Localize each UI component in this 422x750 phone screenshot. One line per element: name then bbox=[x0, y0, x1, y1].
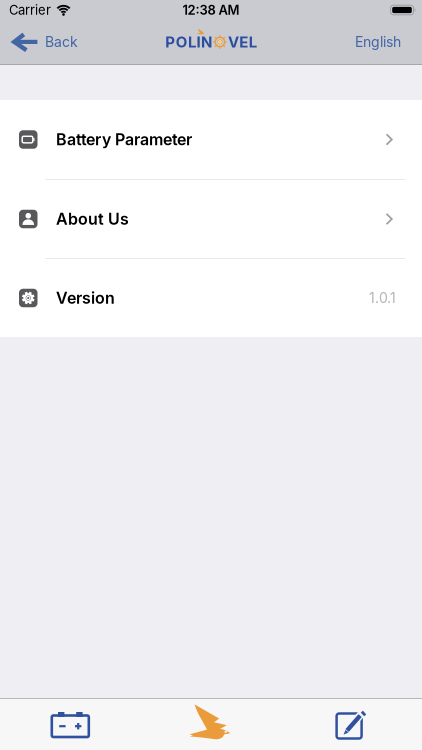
button[interactable]: Battery Parameter bbox=[0, 100, 422, 179]
staticText: 12:38 AM bbox=[182, 2, 239, 18]
button[interactable]: Battery bbox=[0, 699, 141, 750]
button[interactable]: About Us bbox=[0, 180, 422, 258]
staticText: Battery Parameter bbox=[56, 130, 192, 149]
button[interactable]: English bbox=[355, 34, 422, 50]
button[interactable]: Home bbox=[141, 699, 281, 750]
staticText: English bbox=[355, 34, 401, 50]
staticText: Carrier bbox=[9, 2, 51, 18]
button[interactable]: Back bbox=[0, 33, 78, 51]
staticText: VEL bbox=[228, 33, 257, 51]
staticText: Back bbox=[45, 34, 78, 50]
staticText: 1.0.1 bbox=[369, 290, 396, 306]
button[interactable]: Compose bbox=[281, 699, 422, 750]
staticText: POLIN bbox=[165, 33, 212, 51]
staticText: Version bbox=[56, 289, 115, 307]
button[interactable]: Version bbox=[0, 259, 422, 337]
staticText: About Us bbox=[56, 210, 129, 228]
